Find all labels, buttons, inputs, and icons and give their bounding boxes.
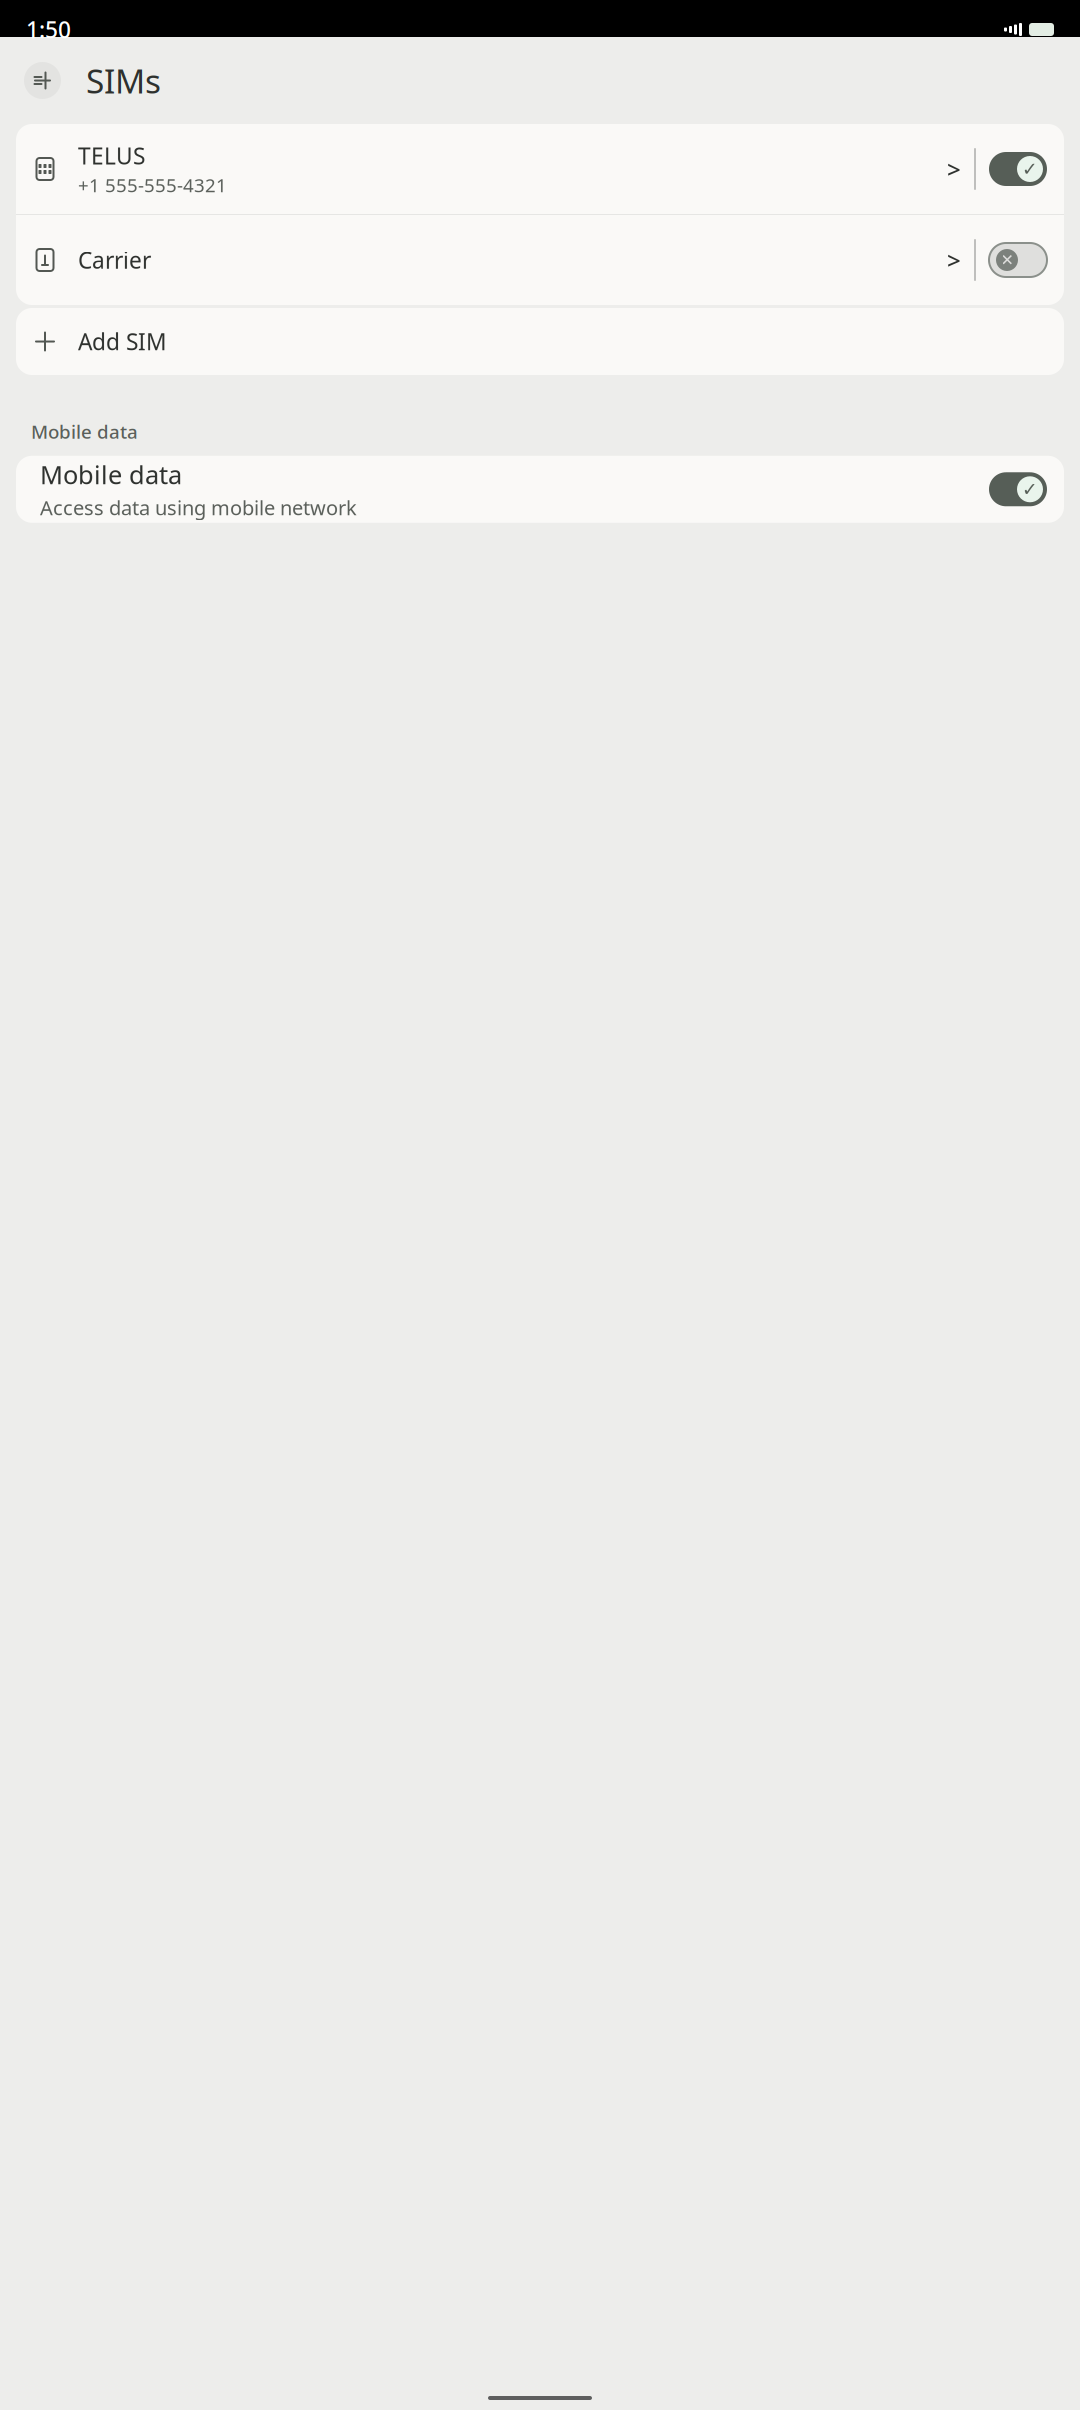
staticText: >	[947, 153, 961, 185]
staticText: Access data using mobile network	[40, 494, 357, 521]
staticText: >	[947, 244, 961, 276]
staticText: Mobile data	[40, 458, 182, 491]
staticText: ✓	[1022, 479, 1038, 500]
staticText: Mobile data	[31, 419, 138, 444]
staticText: ✕	[1000, 251, 1013, 269]
staticText: SIMs	[86, 58, 161, 103]
button[interactable]: Add SIM	[16, 308, 1064, 375]
staticText: +1 555-555-4321	[78, 173, 227, 197]
button[interactable]: TELUS	[16, 124, 961, 214]
staticText: TELUS	[78, 141, 145, 171]
button[interactable]: Back	[24, 62, 61, 99]
button[interactable]: Toggle Mobile data	[989, 472, 1064, 506]
staticText: Add SIM	[78, 326, 167, 356]
staticText: ✓	[1022, 158, 1038, 180]
button[interactable]: Toggle TELUS	[989, 152, 1064, 186]
staticText: 1:50	[26, 14, 71, 44]
staticText: Carrier	[78, 245, 151, 275]
button[interactable]: Toggle Carrier	[989, 243, 1064, 277]
button[interactable]: Carrier	[16, 215, 961, 305]
